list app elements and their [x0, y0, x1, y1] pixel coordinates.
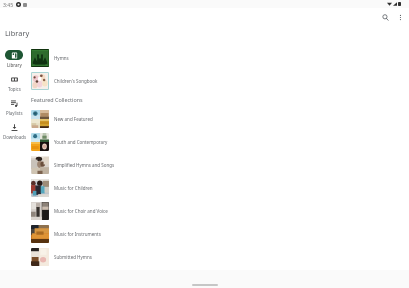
- staticText: 3:45: [3, 1, 14, 8]
- staticText: Music for Instruments: [54, 231, 101, 237]
- button[interactable]: More options: [393, 10, 407, 24]
- button[interactable]: Library: [0, 50, 28, 68]
- staticText: Music for Children: [54, 185, 93, 191]
- button[interactable]: Music for Instruments: [0, 222, 409, 245]
- button[interactable]: Downloads: [0, 122, 28, 140]
- staticText: Youth and Contemporary: [54, 139, 108, 145]
- staticText: Music for Choir and Voice: [54, 208, 108, 214]
- button[interactable]: Simplified Hymns and Songs: [0, 153, 409, 176]
- staticText: Hymns: [54, 55, 69, 61]
- button[interactable]: New and Featured: [0, 107, 409, 130]
- button[interactable]: Search: [378, 10, 392, 24]
- staticText: Downloads: [3, 134, 26, 140]
- button[interactable]: Submitted Hymns: [0, 245, 409, 268]
- button[interactable]: Playlists: [0, 98, 28, 116]
- staticText: Children's Songbook: [54, 78, 98, 84]
- staticText: Topics: [8, 86, 21, 92]
- button[interactable]: Music for Children: [0, 176, 409, 199]
- button[interactable]: Topics: [0, 74, 28, 92]
- staticText: Simplified Hymns and Songs: [54, 162, 115, 168]
- staticText: New and Featured: [54, 116, 93, 122]
- staticText: Library: [5, 28, 30, 38]
- button[interactable]: Children's Songbook: [0, 69, 409, 92]
- staticText: Submitted Hymns: [54, 254, 92, 260]
- staticText: Library: [7, 62, 22, 68]
- staticText: Featured Collections: [31, 96, 83, 103]
- staticText: Playlists: [6, 110, 23, 116]
- button[interactable]: Hymns: [0, 46, 409, 69]
- button[interactable]: Music for Choir and Voice: [0, 199, 409, 222]
- button[interactable]: Youth and Contemporary: [0, 130, 409, 153]
